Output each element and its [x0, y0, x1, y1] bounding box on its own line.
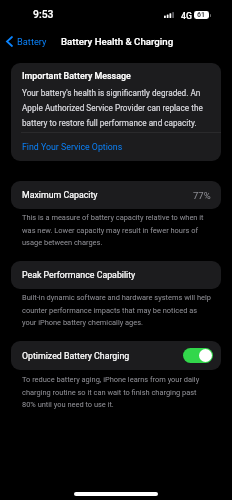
button[interactable]: Optimized Battery Charging toggle — [183, 348, 213, 363]
staticText: Maximum Capacity — [22, 190, 98, 200]
staticText: Optimized Battery Charging — [22, 351, 130, 361]
staticText: 61 — [197, 11, 206, 19]
button[interactable]: Maximum Capacity — [11, 181, 221, 209]
staticText: Built-in dynamic software and hardware s… — [22, 293, 212, 327]
staticText: 4G — [181, 11, 192, 21]
staticText: 77% — [193, 190, 211, 201]
staticText: Peak Performance Capability — [22, 270, 136, 280]
staticText: Battery — [17, 36, 47, 47]
button[interactable]: Battery — [2, 33, 232, 50]
staticText: 9:53 — [33, 8, 54, 20]
staticText: Find Your Service Options — [22, 142, 123, 152]
staticText: This is a measure of battery capacity re… — [22, 213, 204, 247]
button[interactable]: Peak Performance Capability — [11, 261, 221, 289]
staticText: Battery Health & Charging — [61, 36, 174, 47]
staticText: To reduce battery aging, iPhone learns f… — [22, 375, 200, 409]
staticText: Important Battery Message — [22, 71, 131, 81]
staticText: Your battery's health is significantly d… — [22, 88, 203, 128]
button[interactable]: Find Your Service Options — [19, 140, 126, 154]
